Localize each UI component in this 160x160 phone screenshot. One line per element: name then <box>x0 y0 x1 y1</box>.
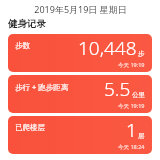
staticText: 5.5 <box>104 76 131 102</box>
staticText: 层 <box>138 132 145 140</box>
staticText: 步 <box>138 50 145 58</box>
button[interactable]: 步数 <box>8 34 152 72</box>
staticText: 今天 19:19 <box>118 61 145 69</box>
staticText: 今天 19:19 <box>118 102 145 110</box>
staticText: 公里 <box>132 91 145 99</box>
staticText: 1 <box>126 117 137 143</box>
staticText: 2019年5月19日 星期日 <box>34 3 127 15</box>
staticText: 步数 <box>15 41 30 50</box>
staticText: 今天 18:24 <box>118 143 145 151</box>
staticText: 健身记录 <box>8 18 46 30</box>
button[interactable]: 已爬楼层 <box>8 116 152 154</box>
staticText: 步行 + 跑步距离 <box>15 82 69 92</box>
staticText: 已爬楼层 <box>15 123 45 132</box>
staticText: 10,448 <box>78 35 137 61</box>
button[interactable]: 步行 + 跑步距离 <box>8 75 152 113</box>
